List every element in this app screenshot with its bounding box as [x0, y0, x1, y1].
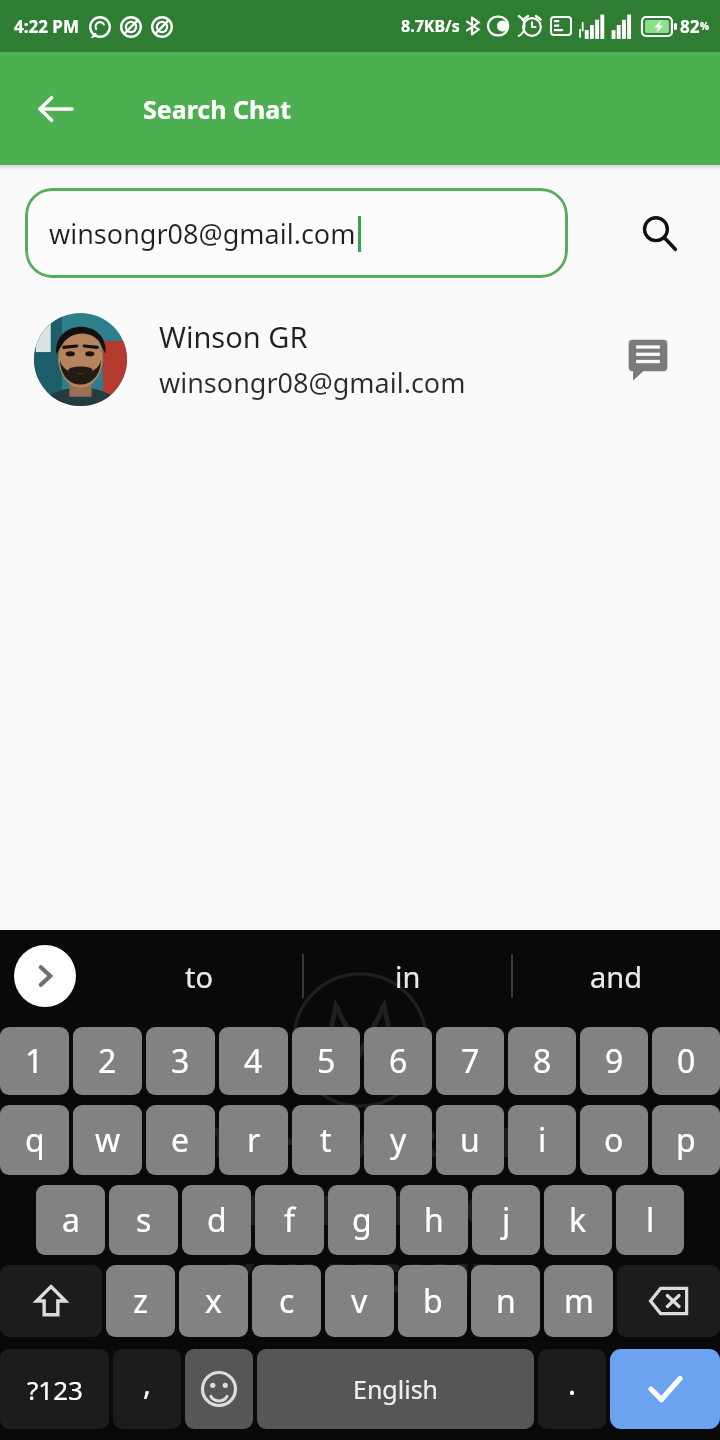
staticText: e — [171, 1118, 190, 1162]
button[interactable]: Message — [620, 331, 676, 387]
button[interactable]: 8 — [508, 1027, 576, 1095]
button[interactable]: q — [0, 1105, 69, 1175]
button[interactable]: t — [292, 1105, 360, 1175]
button[interactable]: h — [400, 1185, 468, 1255]
staticText: 6 — [389, 1039, 408, 1083]
button[interactable]: c — [252, 1265, 321, 1337]
staticText: d — [207, 1198, 227, 1242]
button[interactable]: ?123 — [0, 1349, 109, 1429]
button[interactable]: j — [472, 1185, 540, 1255]
button[interactable]: y — [364, 1105, 432, 1175]
button[interactable]: k — [544, 1185, 612, 1255]
staticText: i — [538, 1118, 547, 1162]
button[interactable]: m — [544, 1265, 613, 1337]
button[interactable]: v — [325, 1265, 394, 1337]
button[interactable]: b — [398, 1265, 467, 1337]
staticText: . — [568, 1363, 577, 1404]
staticText: GET, THE MORE OF A — [0, 1114, 720, 1168]
button[interactable]: f — [255, 1185, 324, 1255]
staticText: 8 — [533, 1039, 552, 1083]
staticText: p — [676, 1118, 696, 1162]
staticText: 4:22 PM — [14, 15, 79, 38]
staticText: r — [247, 1118, 261, 1162]
staticText: Search Chat — [143, 92, 292, 126]
button[interactable]: and — [513, 936, 720, 1016]
button[interactable]: More suggestions — [14, 945, 76, 1007]
staticText: winsongr08@gmail.com — [49, 215, 356, 252]
button[interactable]: English — [257, 1349, 534, 1429]
staticText: ?123 — [27, 1372, 83, 1407]
staticText: k — [569, 1198, 587, 1242]
button[interactable]: 6 — [364, 1027, 432, 1095]
button[interactable]: g — [328, 1185, 396, 1255]
button[interactable]: r — [219, 1105, 288, 1175]
button[interactable]: e — [146, 1105, 215, 1175]
staticText: j — [502, 1198, 511, 1242]
staticText: English — [353, 1372, 439, 1406]
button[interactable]: Back — [22, 76, 88, 142]
button[interactable]: 3 — [146, 1027, 215, 1095]
button[interactable]: i — [508, 1105, 576, 1175]
staticText: % — [700, 19, 710, 33]
button[interactable]: d — [182, 1185, 251, 1255]
button[interactable]: 9 — [580, 1027, 648, 1095]
button[interactable]: Search — [625, 199, 693, 267]
button[interactable]: . — [538, 1349, 606, 1429]
button[interactable]: l — [616, 1185, 684, 1255]
staticText: 0 — [677, 1039, 696, 1083]
staticText: f — [284, 1198, 296, 1242]
button[interactable]: z — [106, 1265, 175, 1337]
button[interactable]: Shift — [0, 1265, 102, 1337]
button[interactable]: w — [73, 1105, 142, 1175]
staticText: q — [25, 1118, 45, 1162]
button[interactable]: n — [471, 1265, 540, 1337]
button[interactable]: 1 — [0, 1027, 69, 1095]
button[interactable]: Emoji — [185, 1349, 253, 1429]
button[interactable]: p — [652, 1105, 720, 1175]
staticText: 9 — [605, 1039, 624, 1083]
button[interactable]: Backspace — [617, 1265, 720, 1337]
staticText: v — [351, 1279, 368, 1323]
button[interactable]: 4 — [219, 1027, 288, 1095]
staticText: x — [205, 1279, 222, 1323]
staticText: PRIVATE PERSON — [0, 1182, 720, 1236]
staticText: and — [590, 957, 643, 996]
button[interactable]: s — [109, 1185, 178, 1255]
button[interactable]: to — [96, 936, 302, 1016]
staticText: winsongr08@gmail.com — [159, 364, 466, 401]
button[interactable]: o — [580, 1105, 648, 1175]
staticText: 5 — [317, 1039, 336, 1083]
staticText: c — [279, 1279, 295, 1323]
staticText: y — [390, 1118, 407, 1162]
button[interactable]: 7 — [436, 1027, 504, 1095]
staticText: m — [564, 1279, 594, 1323]
button[interactable]: Winson GR — [0, 295, 720, 423]
button[interactable]: 2 — [73, 1027, 142, 1095]
staticText: n — [496, 1279, 516, 1323]
staticText: 2 — [98, 1039, 117, 1083]
staticText: 8.7KB/s — [401, 15, 460, 37]
button[interactable]: u — [436, 1105, 504, 1175]
staticText: g — [352, 1198, 372, 1242]
button[interactable]: a — [36, 1185, 105, 1255]
staticText: o — [604, 1118, 624, 1162]
staticText: l — [646, 1198, 655, 1242]
staticText: 3 — [171, 1039, 190, 1083]
staticText: Winson GR — [159, 317, 308, 356]
staticText: YOU BECOME — [0, 1250, 720, 1304]
staticText: to — [185, 957, 214, 996]
button[interactable]: Enter — [610, 1349, 720, 1429]
button[interactable]: x — [179, 1265, 248, 1337]
staticText: 7 — [461, 1039, 480, 1083]
staticText: w — [95, 1118, 121, 1162]
staticText: s — [136, 1198, 152, 1242]
button[interactable]: 5 — [292, 1027, 360, 1095]
button[interactable]: in — [304, 936, 511, 1016]
staticText: 82 — [680, 15, 700, 38]
button[interactable]: 0 — [652, 1027, 720, 1095]
staticText: h — [424, 1198, 444, 1242]
button[interactable]: winsongr08@gmail.com — [25, 188, 568, 278]
staticText: b — [423, 1279, 443, 1323]
staticText: z — [133, 1279, 149, 1323]
button[interactable]: , — [113, 1349, 181, 1429]
